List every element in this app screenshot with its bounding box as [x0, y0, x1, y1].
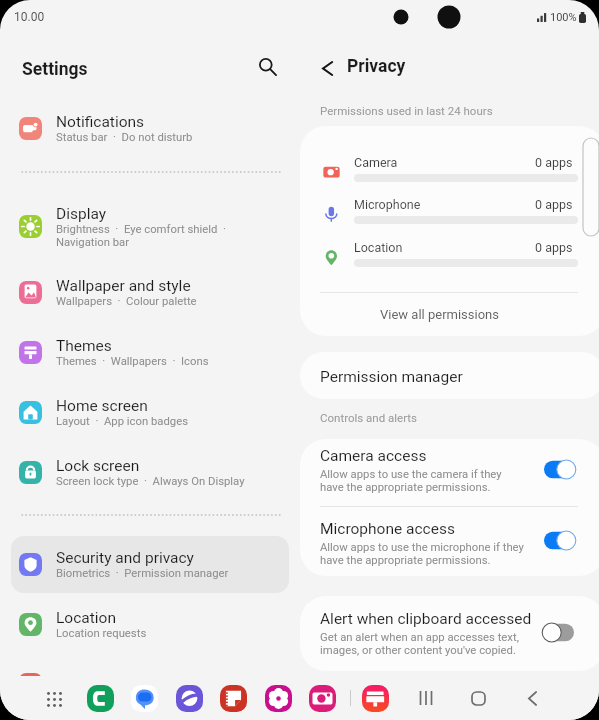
button[interactable]: Internet — [176, 685, 203, 712]
staticText: Privacy — [347, 56, 406, 77]
staticText: Allow apps to use the camera if they — [320, 468, 502, 481]
button[interactable]: Home screen — [11, 384, 289, 441]
button[interactable]: Notes — [220, 685, 247, 712]
button[interactable]: Camera access — [300, 439, 599, 506]
staticText: Get an alert when an app accesses text, — [320, 631, 519, 644]
button[interactable]: Microphone access — [544, 530, 575, 551]
button[interactable]: Paint — [362, 685, 389, 712]
staticText: 0 apps — [535, 240, 573, 255]
staticText: Wallpapers · Colour palette — [56, 295, 197, 308]
button[interactable]: Back — [313, 54, 341, 82]
staticText: Permission manager — [320, 368, 463, 386]
staticText: Location — [354, 240, 403, 255]
button[interactable]: Camera — [300, 152, 599, 192]
button[interactable]: Lock screen — [11, 444, 289, 501]
button[interactable]: Search — [250, 49, 284, 83]
button[interactable]: Location — [11, 596, 289, 653]
staticText: Settings — [22, 59, 88, 80]
staticText: Home screen — [56, 397, 148, 415]
staticText: Permissions used in last 24 hours — [320, 104, 493, 117]
button[interactable]: Safety and emergency — [11, 656, 289, 713]
staticText: Microphone access — [320, 520, 455, 538]
staticText: 100% — [550, 11, 577, 24]
staticText: 0 apps — [535, 155, 573, 170]
button[interactable]: Camera access — [544, 459, 575, 480]
staticText: Screen lock type · Always On Display — [56, 475, 245, 488]
staticText: Security and privacy — [56, 549, 194, 567]
staticText: have the appropriate permissions. — [320, 481, 491, 494]
button[interactable]: Security and privacy — [11, 536, 289, 593]
staticText: Location — [56, 609, 116, 627]
staticText: Alert when clipboard accessed — [320, 610, 532, 628]
staticText: Biometrics · Permission manager — [56, 567, 229, 580]
staticText: Layout · App icon badges — [56, 415, 188, 428]
button[interactable]: Themes — [11, 324, 289, 381]
staticText: Themes · Wallpapers · Icons — [56, 355, 209, 368]
button[interactable]: Recents — [412, 684, 440, 712]
staticText: Brightness · Eye comfort shield · — [56, 223, 226, 236]
staticText: Camera — [354, 155, 398, 170]
staticText: View all permissions — [380, 307, 499, 322]
button[interactable]: Alert when clipboard accessed — [544, 622, 575, 643]
button[interactable]: View all permissions — [300, 293, 599, 336]
staticText: Status bar · Do not disturb — [56, 131, 193, 144]
button[interactable]: Display — [11, 192, 289, 261]
button[interactable]: Microphone access — [300, 507, 599, 576]
staticText: Lock screen — [56, 457, 140, 475]
button[interactable]: Back — [518, 684, 546, 712]
staticText: Allow apps to use the microphone if they — [320, 541, 524, 554]
staticText: Microphone — [354, 197, 421, 212]
staticText: Navigation bar — [56, 236, 130, 249]
staticText: Camera access — [320, 447, 427, 465]
button[interactable]: Phone — [87, 685, 114, 712]
staticText: Themes — [56, 337, 112, 355]
button[interactable]: Wallpaper and style — [11, 264, 289, 321]
staticText: 10.00 — [14, 10, 45, 24]
staticText: Notifications — [56, 113, 145, 131]
button[interactable]: Alert when clipboard accessed — [300, 596, 599, 671]
staticText: images, or other content you've copied. — [320, 644, 516, 657]
button[interactable]: Location — [300, 237, 599, 277]
staticText: Safety and emergency — [56, 676, 209, 694]
button[interactable]: Home — [464, 684, 492, 712]
staticText: 0 apps — [535, 197, 573, 212]
staticText: Controls and alerts — [320, 411, 418, 424]
button[interactable]: Permission manager — [300, 352, 599, 399]
button[interactable]: Notifications — [11, 100, 289, 157]
button[interactable]: Microphone — [300, 194, 599, 234]
button[interactable]: Messages — [131, 685, 158, 712]
button[interactable]: Gallery — [265, 685, 292, 712]
staticText: Location requests — [56, 627, 147, 640]
staticText: Display — [56, 205, 107, 223]
staticText: have the appropriate permissions. — [320, 554, 491, 567]
button[interactable]: All apps — [41, 686, 66, 711]
staticText: Wallpaper and style — [56, 277, 191, 295]
button[interactable]: Camera — [309, 685, 336, 712]
